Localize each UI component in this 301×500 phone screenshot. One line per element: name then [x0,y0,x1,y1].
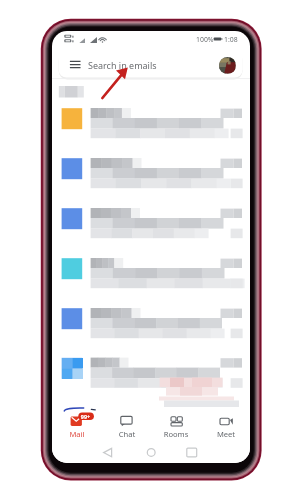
button[interactable]: Search in emails [88,59,198,72]
button[interactable]: Recent apps [180,439,204,463]
button[interactable]: Chat [102,407,152,440]
button[interactable]: Account [218,56,236,74]
button[interactable]: Email conversation [52,349,250,397]
staticText: 99+ [78,413,93,421]
button[interactable]: Open navigation menu [65,56,85,74]
staticText: Chat [102,429,152,439]
staticText: Rooms [151,429,201,439]
staticText: Meet [201,429,250,439]
staticText: 1:08 [224,35,238,44]
button[interactable]: Email conversation [52,249,250,297]
button[interactable]: Email conversation [52,299,250,347]
button[interactable]: Email conversation [52,199,250,247]
button[interactable]: Back [96,439,120,463]
staticText: 100% [196,35,214,44]
button[interactable]: Meet [201,407,250,440]
button[interactable]: Email conversation [52,99,250,147]
staticText: Search in emails [88,59,157,71]
button[interactable]: Email conversation [52,149,250,197]
button[interactable]: 99+ [52,407,102,440]
staticText: Mail [52,429,102,439]
button[interactable]: Home [139,439,163,463]
button[interactable]: Rooms [151,407,201,440]
